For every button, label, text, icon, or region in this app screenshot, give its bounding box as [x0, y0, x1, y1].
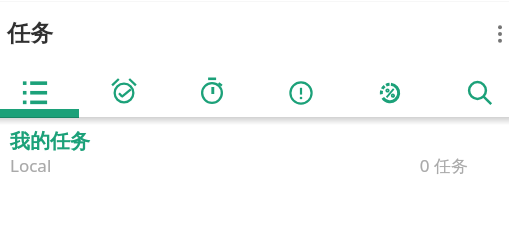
button[interactable]: Progress — [345, 56, 434, 118]
button[interactable]: 我的任务 — [0, 124, 509, 180]
button[interactable]: Search — [433, 56, 509, 118]
staticText: 任务 — [7, 19, 53, 48]
staticText: 我的任务 — [10, 129, 90, 154]
button[interactable]: More options — [481, 15, 509, 53]
staticText: 0 任务 — [340, 154, 468, 177]
button[interactable]: Priority — [256, 56, 345, 118]
staticText: Local — [10, 154, 52, 177]
button[interactable]: Timers — [167, 56, 256, 118]
button[interactable]: Tasks list — [0, 56, 79, 118]
button[interactable]: Alarms — [79, 56, 168, 118]
